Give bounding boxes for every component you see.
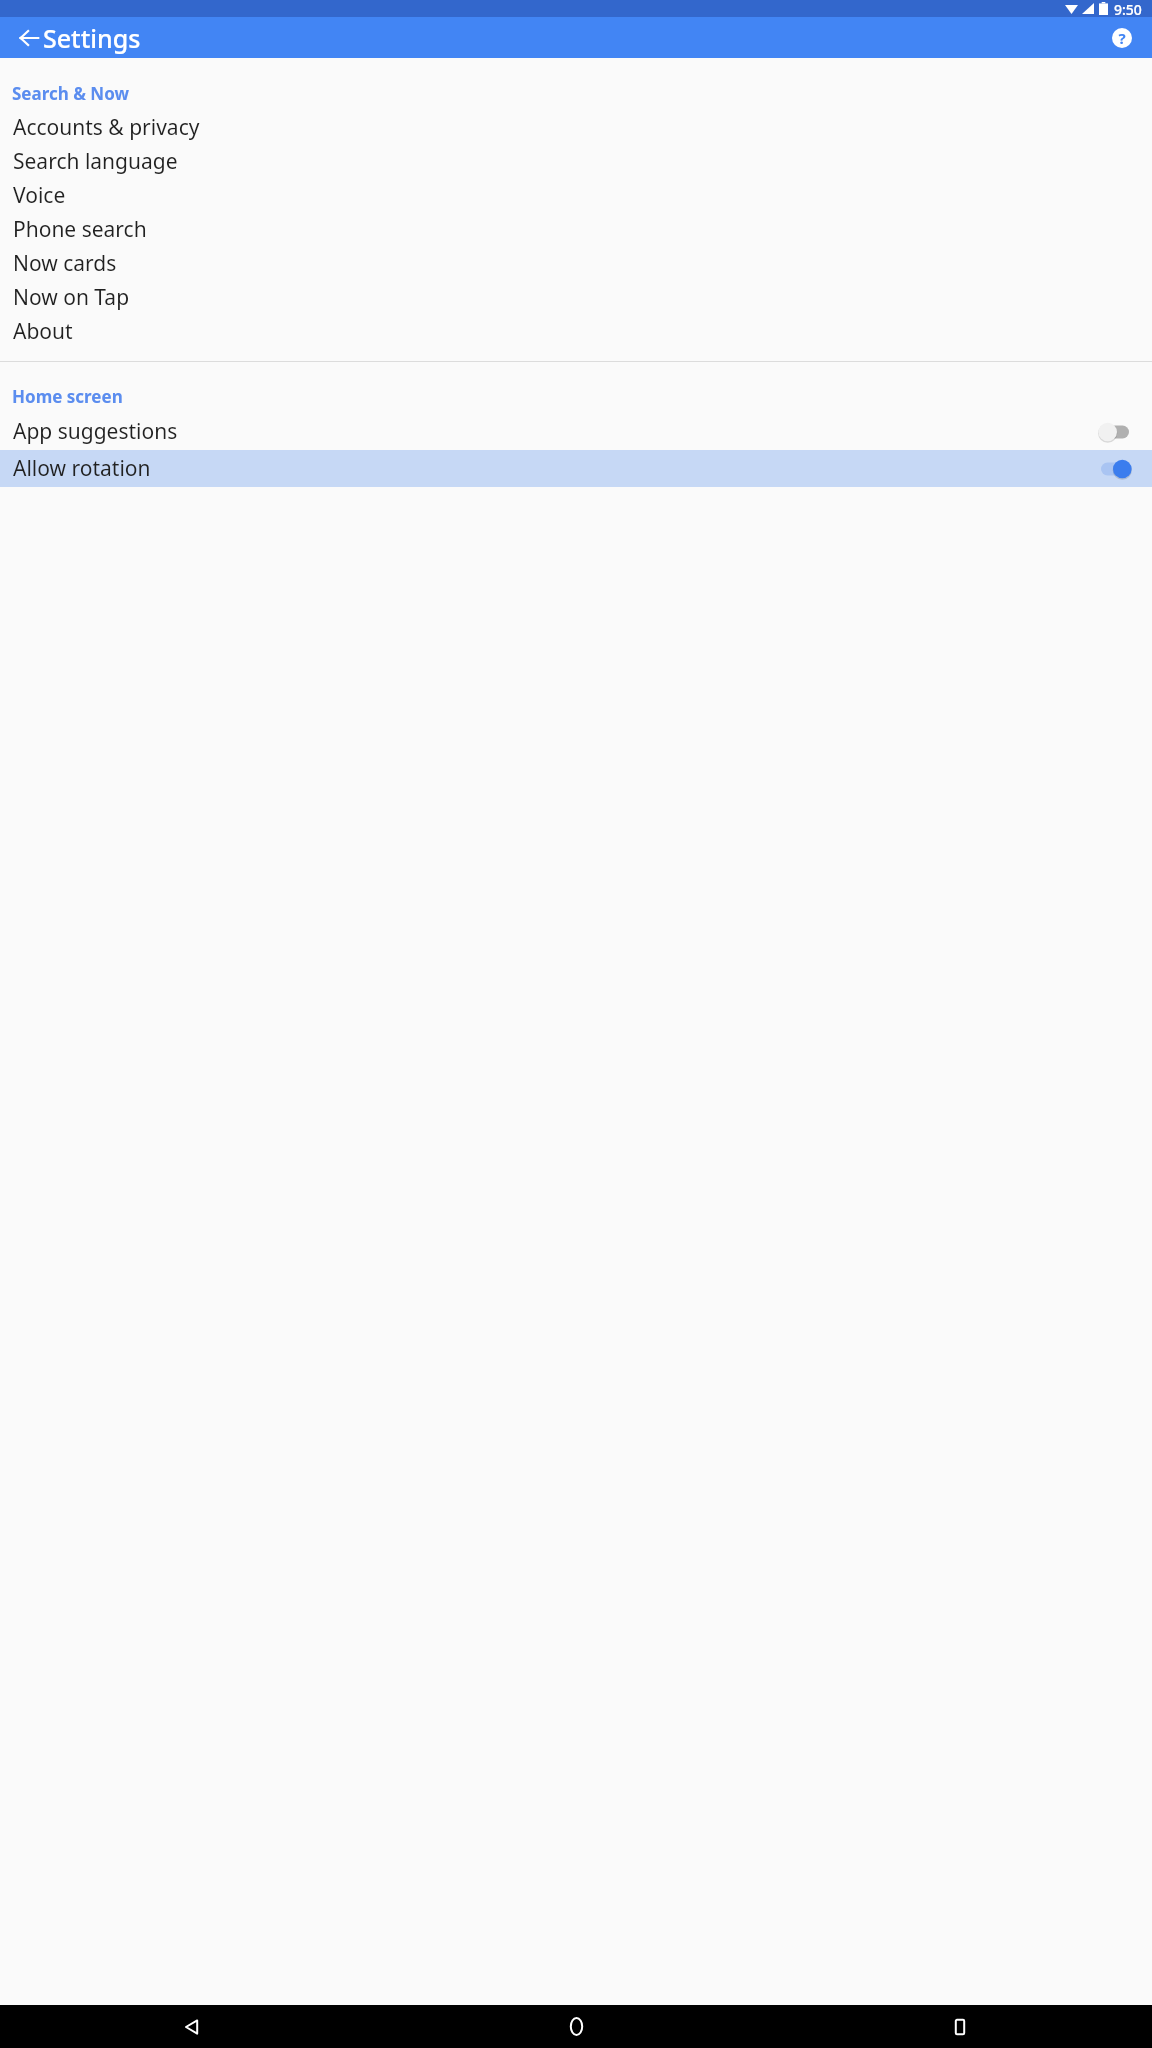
staticText: Allow rotation (13, 454, 1098, 483)
button[interactable]: Allow rotation (0, 450, 1152, 487)
button[interactable]: Back (0, 2005, 384, 2048)
button[interactable]: Now on Tap (0, 280, 1152, 314)
staticText: Accounts & privacy (13, 113, 200, 142)
button[interactable]: Phone search (0, 212, 1152, 246)
button[interactable]: Now cards (0, 246, 1152, 280)
button[interactable]: Search language (0, 144, 1152, 178)
staticText: About (13, 317, 73, 346)
staticText: Search language (13, 147, 178, 176)
button[interactable]: Voice (0, 178, 1152, 212)
staticText: Settings (43, 21, 141, 55)
button[interactable]: Help (1098, 17, 1146, 58)
staticText: 9:50 (1114, 0, 1142, 17)
staticText: App suggestions (13, 417, 1098, 446)
button[interactable]: Home (384, 2005, 768, 2048)
staticText: Phone search (13, 215, 147, 244)
staticText: Home screen (12, 385, 123, 408)
staticText: Voice (13, 181, 66, 210)
staticText: ? (1118, 28, 1126, 48)
button[interactable]: App suggestions (0, 413, 1152, 450)
staticText: Now on Tap (13, 283, 130, 312)
button[interactable]: Recent apps (768, 2005, 1152, 2048)
button[interactable]: About (0, 314, 1152, 348)
staticText: Now cards (13, 249, 117, 278)
staticText: Search & Now (12, 82, 130, 105)
button[interactable]: Accounts & privacy (0, 110, 1152, 144)
button[interactable]: Back (5, 17, 53, 58)
